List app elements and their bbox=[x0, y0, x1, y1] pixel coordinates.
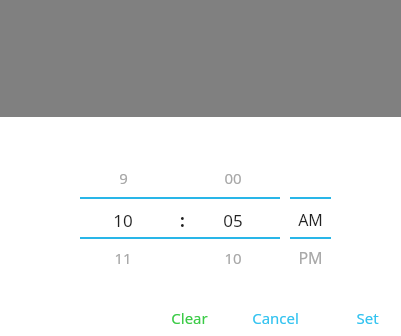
staticText: Set bbox=[356, 308, 379, 328]
staticText: Clear bbox=[171, 308, 208, 328]
staticText: 10 bbox=[113, 209, 133, 232]
staticText: 10 bbox=[224, 248, 242, 268]
staticText: 05 bbox=[223, 209, 243, 232]
staticText: AM bbox=[298, 209, 323, 231]
button[interactable]: Clear bbox=[163, 303, 215, 333]
button[interactable]: AM bbox=[290, 205, 331, 235]
staticText: 9 bbox=[119, 168, 128, 188]
button[interactable]: 05 bbox=[190, 205, 276, 235]
button[interactable]: Cancel bbox=[245, 303, 305, 333]
button[interactable]: Set bbox=[343, 303, 391, 333]
button[interactable]: 10 bbox=[80, 205, 166, 235]
staticText: 00 bbox=[224, 168, 242, 188]
staticText: Cancel bbox=[252, 308, 299, 328]
staticText: : bbox=[180, 209, 185, 232]
staticText: PM bbox=[298, 247, 323, 269]
staticText: 11 bbox=[114, 248, 132, 268]
